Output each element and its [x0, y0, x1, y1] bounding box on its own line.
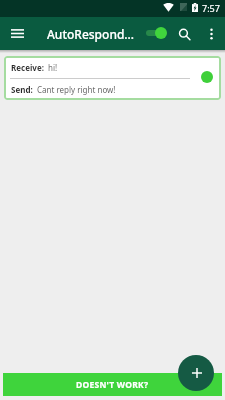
staticText: Cant reply right now! — [37, 84, 116, 95]
staticText: DOESN'T WORK? — [76, 379, 149, 391]
staticText: Send: — [11, 84, 33, 95]
staticText: Receive: — [11, 62, 44, 73]
button[interactable]: Toggle auto respond — [142, 22, 170, 44]
button[interactable]: DOESN'T WORK? — [3, 373, 222, 396]
button[interactable]: Menu — [4, 20, 31, 47]
button[interactable]: More options — [200, 22, 223, 45]
button[interactable]: Add — [178, 355, 214, 391]
staticText: 7:57 — [202, 2, 220, 14]
staticText: hi! — [48, 62, 58, 73]
button[interactable]: Receive: — [4, 56, 221, 100]
button[interactable]: Search — [172, 22, 196, 46]
staticText: AutoRespond… — [47, 26, 135, 42]
